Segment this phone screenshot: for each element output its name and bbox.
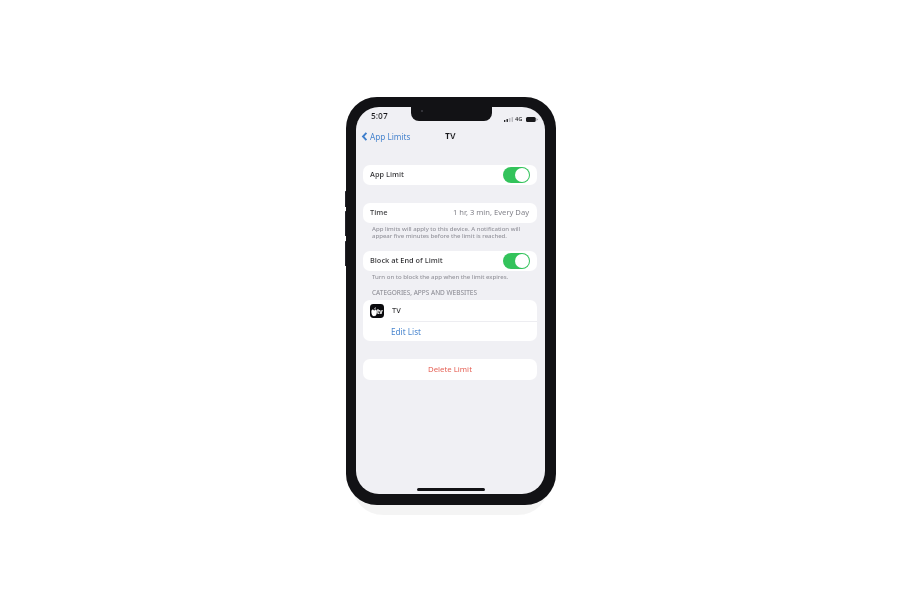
button[interactable]: Delete Limit [363, 359, 537, 380]
staticText: App Limits [370, 131, 411, 142]
staticText: CATEGORIES, APPS AND WEBSITES [372, 288, 477, 297]
staticText: tv [377, 307, 383, 315]
staticText: 4G [515, 115, 523, 123]
button[interactable]: Block at End of Limit [363, 251, 537, 271]
staticText: App Limit [370, 169, 405, 179]
button[interactable]: Time [363, 203, 537, 223]
button[interactable]: Edit List [363, 321, 537, 341]
staticText: TV [445, 130, 456, 142]
button[interactable]: Block at End of Limit toggle [503, 253, 530, 269]
staticText: Time [370, 207, 388, 217]
staticText: Delete Limit [428, 364, 472, 375]
staticText: Edit List [391, 326, 422, 337]
button[interactable]: App Limit toggle [503, 167, 530, 183]
button[interactable]: App Limit [363, 165, 537, 185]
staticText: 1 hr, 3 min, Every Day [453, 207, 530, 217]
staticText: Turn on to block the app when the limit … [372, 272, 509, 280]
staticText: App limits will apply to this device. A … [372, 224, 521, 232]
button[interactable]: App Limits [359, 128, 415, 144]
staticText: appear five minutes before the limit is … [372, 231, 508, 239]
staticText: 5:07 [371, 110, 388, 121]
button[interactable]: tv [363, 300, 537, 321]
staticText: Block at End of Limit [370, 255, 443, 265]
staticText: TV [392, 305, 401, 315]
